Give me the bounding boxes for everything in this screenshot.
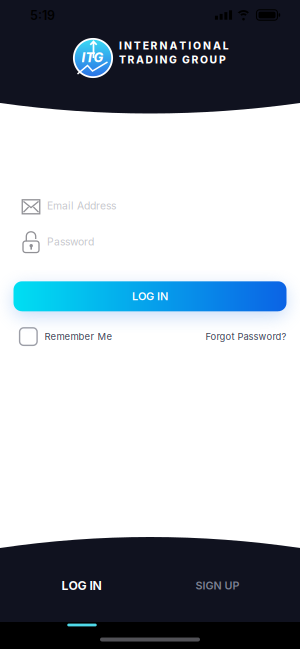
staticText: E [143, 39, 149, 52]
button[interactable]: Forgot Password? [126, 331, 286, 342]
staticText: R [151, 39, 158, 52]
staticText: N [159, 39, 167, 52]
staticText: I [188, 39, 191, 52]
staticText: T [119, 53, 126, 66]
staticText: R [127, 53, 134, 66]
button[interactable]: LOG IN [36, 568, 126, 602]
staticText: A [136, 53, 144, 66]
button[interactable]: Remember Me [20, 328, 180, 345]
staticText: 5:19 [30, 8, 55, 23]
staticText: O [193, 39, 201, 52]
staticText: I [119, 39, 122, 52]
button[interactable]: LOG IN [13, 281, 286, 311]
staticText: R [191, 53, 198, 66]
staticText: P [219, 53, 226, 66]
staticText: A [213, 39, 221, 52]
staticText: G [169, 53, 177, 66]
staticText: I [155, 53, 158, 66]
staticText: LOG IN [132, 290, 168, 303]
staticText: O [200, 53, 208, 66]
staticText: SIGN UP [195, 579, 239, 592]
button[interactable]: SIGN UP [172, 568, 262, 602]
staticText: D [145, 53, 153, 66]
staticText: Email Address [47, 199, 116, 212]
staticText: Remember Me [44, 331, 112, 342]
staticText: T [179, 39, 186, 52]
staticText: LOG IN [61, 578, 101, 593]
staticText: L [223, 39, 229, 52]
staticText: A [169, 39, 177, 52]
staticText: N [203, 39, 211, 52]
staticText: ITG [81, 50, 103, 65]
staticText: U [209, 53, 217, 66]
staticText: T [134, 39, 141, 52]
staticText: N [159, 53, 167, 66]
staticText: Password [47, 235, 94, 248]
staticText: G [182, 53, 190, 66]
staticText: Forgot Password? [205, 331, 286, 342]
staticText: N [124, 39, 132, 52]
